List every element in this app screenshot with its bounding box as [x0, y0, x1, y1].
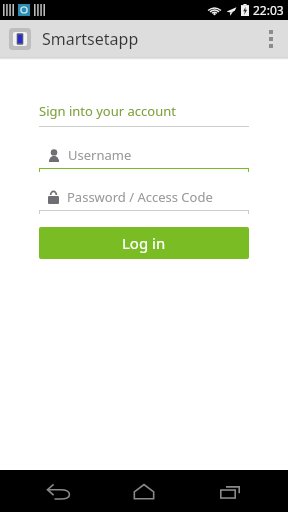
button[interactable]: Password / Access Code — [39, 186, 249, 214]
button[interactable]: Home — [116, 470, 172, 512]
staticText: Password / Access Code — [67, 188, 213, 206]
staticText: Username — [68, 146, 132, 164]
button[interactable]: Back — [30, 470, 86, 512]
staticText: Sign into your account — [39, 102, 176, 120]
staticText: Smartsetapp — [42, 28, 139, 50]
staticText: 22:03 — [253, 2, 284, 18]
button[interactable]: Username — [39, 144, 249, 172]
button[interactable]: More options — [254, 20, 288, 57]
button[interactable]: Log in — [39, 227, 249, 259]
button[interactable]: Recent apps — [202, 470, 258, 512]
staticText: Log in — [122, 233, 166, 253]
